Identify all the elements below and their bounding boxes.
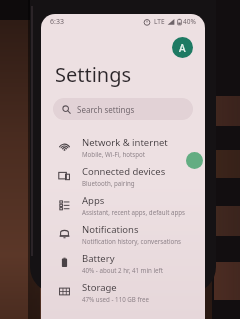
staticText: Search settings — [77, 104, 135, 115]
staticText: Mobile, Wi-Fi, hotspot — [82, 150, 146, 158]
button[interactable]: Storage — [41, 277, 205, 306]
staticText: LTE — [154, 17, 165, 26]
staticText: Notification history, conversations — [82, 237, 182, 245]
staticText: A — [179, 41, 186, 55]
button[interactable]: Connected devices — [41, 161, 205, 190]
button[interactable]: Account — [172, 37, 193, 58]
button[interactable]: Notifications — [41, 219, 205, 248]
staticText: Connected devices — [82, 165, 166, 178]
button[interactable]: Battery — [41, 248, 205, 277]
staticText: Apps — [82, 194, 105, 207]
staticText: Battery — [82, 252, 115, 265]
staticText: Bluetooth, pairing — [82, 179, 135, 187]
staticText: Network & internet — [82, 136, 168, 149]
button[interactable]: Search settings — [53, 98, 193, 120]
staticText: Settings — [55, 61, 132, 88]
staticText: Notifications — [82, 223, 139, 236]
staticText: Storage — [82, 281, 117, 294]
staticText: 40% — [183, 17, 196, 26]
staticText: 6:33 — [50, 17, 64, 27]
button[interactable]: Apps — [41, 190, 205, 219]
staticText: 47% used - 110 GB free — [82, 295, 150, 303]
staticText: Assistant, recent apps, default apps — [82, 208, 186, 216]
staticText: 40% - about 2 hr, 41 min left — [82, 266, 163, 274]
button[interactable]: Network & internet — [41, 132, 205, 161]
